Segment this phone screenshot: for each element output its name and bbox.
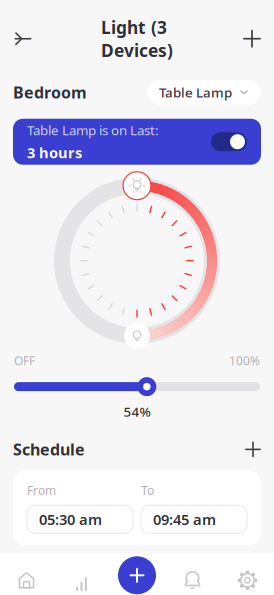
- button[interactable]: Table Lamp: [147, 80, 261, 105]
- button[interactable]: Notifications: [165, 554, 220, 595]
- button[interactable]: 09:45 am: [141, 505, 247, 533]
- staticText: 100%: [229, 353, 260, 369]
- button[interactable]: Add: [118, 556, 156, 594]
- staticText: 09:45 am: [153, 510, 216, 529]
- staticText: 05:30 am: [39, 510, 102, 529]
- staticText: Table Lamp: [159, 83, 232, 101]
- staticText: Bedroom: [13, 82, 87, 103]
- button[interactable]: Settings: [220, 554, 274, 595]
- staticText: Light (3 Devices): [101, 16, 173, 62]
- staticText: OFF: [14, 353, 35, 369]
- button[interactable]: 05:30 am: [27, 505, 133, 533]
- staticText: Schedule: [13, 439, 85, 460]
- button[interactable]: Add schedule: [235, 436, 261, 462]
- staticText: Table Lamp is on Last:: [27, 121, 159, 139]
- staticText: 3 hours: [27, 143, 82, 162]
- button[interactable]: Back: [13, 24, 43, 54]
- staticText: To: [141, 482, 154, 498]
- button[interactable]: Add device: [231, 24, 261, 54]
- button[interactable]: Home: [0, 554, 54, 595]
- button[interactable]: Statistics: [54, 554, 109, 595]
- staticText: 54%: [123, 403, 150, 420]
- button[interactable]: Power toggle: [211, 132, 247, 151]
- staticText: From: [27, 482, 56, 498]
